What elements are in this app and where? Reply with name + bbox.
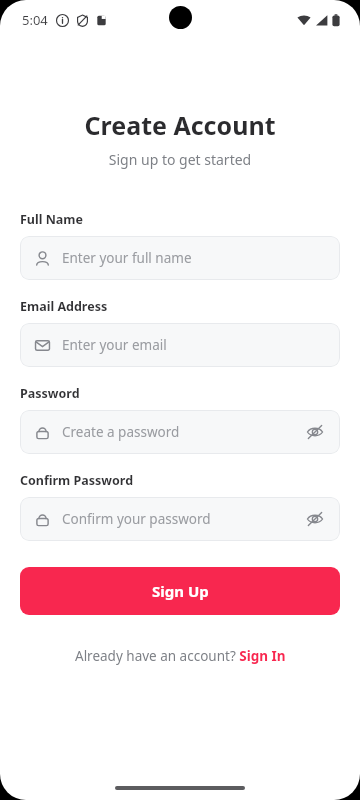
staticText: Sign Up bbox=[152, 581, 209, 601]
staticText: Full Name bbox=[20, 211, 83, 228]
staticText: Already have an account? Sign In bbox=[75, 647, 286, 665]
button[interactable]: Enter your email bbox=[20, 323, 340, 367]
button[interactable]: Create a password bbox=[20, 410, 340, 454]
button[interactable]: Enter your full name bbox=[20, 236, 340, 280]
staticText: Create a password bbox=[62, 423, 304, 441]
button[interactable]: Show password bbox=[304, 508, 326, 530]
staticText: Email Address bbox=[20, 298, 108, 315]
staticText: Sign up to get started bbox=[20, 150, 340, 169]
button[interactable]: Sign Up bbox=[20, 567, 340, 615]
button[interactable]: Show password bbox=[304, 421, 326, 443]
staticText: Password bbox=[20, 385, 80, 402]
staticText: Confirm Password bbox=[20, 472, 134, 489]
button[interactable]: Already have an account? Sign In bbox=[20, 647, 340, 665]
staticText: Enter your email bbox=[62, 336, 326, 354]
staticText: Enter your full name bbox=[62, 249, 326, 267]
button[interactable]: Confirm your password bbox=[20, 497, 340, 541]
staticText: Confirm your password bbox=[62, 510, 304, 528]
staticText: Create Account bbox=[20, 108, 340, 142]
staticText: 5:04 bbox=[22, 11, 48, 29]
